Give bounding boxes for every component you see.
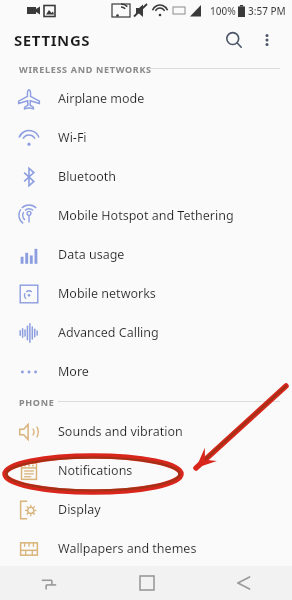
staticText: Bluetooth	[58, 168, 117, 185]
button[interactable]: Back	[195, 566, 292, 600]
button[interactable]: Home	[98, 566, 195, 600]
staticText: Airplane mode	[58, 90, 145, 107]
button[interactable]: Display	[0, 490, 292, 529]
staticText: PHONE	[19, 396, 55, 408]
staticText: 3:57 PM	[248, 4, 286, 18]
button[interactable]: Recents	[0, 566, 98, 600]
button[interactable]: Data usage	[0, 235, 292, 274]
button[interactable]: Mobile networks	[0, 274, 292, 313]
staticText: Display	[58, 501, 101, 518]
button[interactable]: Mobile Hotspot and Tethering	[0, 196, 292, 235]
staticText: SETTINGS	[14, 30, 91, 50]
button[interactable]: Notifications	[0, 451, 292, 490]
staticText: 100%	[210, 4, 236, 18]
staticText: Data usage	[58, 246, 125, 263]
staticText: WIRELESS AND NETWORKS	[19, 63, 152, 75]
button[interactable]: Sounds and vibration	[0, 412, 292, 451]
button[interactable]: Advanced Calling	[0, 313, 292, 352]
button[interactable]: Bluetooth	[0, 157, 292, 196]
staticText: Sounds and vibration	[58, 423, 183, 440]
button[interactable]: Airplane mode	[0, 79, 292, 118]
staticText: Notifications	[58, 462, 133, 479]
staticText: Wallpapers and themes	[58, 540, 197, 557]
staticText: Advanced Calling	[58, 324, 159, 341]
staticText: More	[58, 363, 89, 380]
staticText: Mobile Hotspot and Tethering	[58, 207, 234, 224]
staticText: Wi-Fi	[58, 129, 87, 146]
button[interactable]: More options	[252, 25, 282, 55]
staticText: Mobile networks	[58, 285, 156, 302]
button[interactable]: Wi-Fi	[0, 118, 292, 157]
button[interactable]: More	[0, 352, 292, 391]
button[interactable]: Search	[218, 24, 250, 56]
button[interactable]: Wallpapers and themes	[0, 529, 292, 568]
